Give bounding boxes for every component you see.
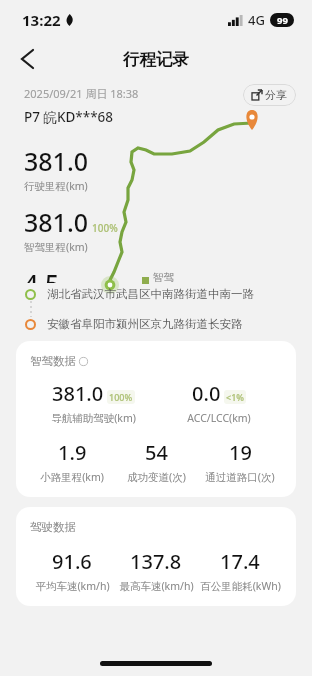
staticText: P7 皖KD***68	[24, 108, 114, 126]
staticText: 100%	[109, 391, 133, 403]
staticText: <1%	[226, 391, 244, 403]
staticText: 通过道路口(次)	[205, 470, 275, 484]
staticText: 平均车速(km/h)	[35, 579, 110, 593]
staticText: 百公里能耗(kWh)	[200, 579, 281, 593]
staticText: 137.8	[130, 548, 182, 575]
staticText: 54	[145, 439, 168, 466]
staticText: 100%	[92, 221, 118, 235]
staticText: 99	[277, 14, 288, 27]
staticText: 19	[229, 439, 252, 466]
staticText: 安徽省阜阳市颍州区京九路街道长安路	[47, 317, 243, 331]
staticText: 最高车速(km/h)	[119, 579, 194, 593]
button[interactable]: 分享	[243, 84, 296, 106]
staticText: 1.9	[58, 439, 87, 466]
staticText: ACC/LCC(km)	[187, 411, 251, 425]
staticText: 17.4	[220, 548, 260, 575]
staticText: 分享	[265, 88, 287, 102]
staticText: 智驾数据	[30, 354, 76, 368]
staticText: 2025/09/21 周日 18:38	[24, 86, 139, 101]
button[interactable]: 智驾数据	[16, 341, 296, 497]
staticText: 智驾里程(km)	[24, 240, 88, 254]
staticText: 智驾	[153, 271, 174, 284]
staticText: 湖北省武汉市武昌区中南路街道中南一路	[47, 287, 254, 301]
staticText: 381.0	[52, 380, 104, 407]
staticText: 13:22	[22, 10, 61, 30]
staticText: 4G	[248, 11, 265, 29]
staticText: 0.0	[192, 380, 221, 407]
button[interactable]: 驾驶数据	[16, 507, 296, 606]
button[interactable]: Back	[10, 42, 44, 76]
staticText: 381.0	[24, 144, 89, 178]
staticText: 4.5	[24, 266, 60, 283]
staticText: 驾驶数据	[30, 520, 76, 534]
staticText: 381.0	[24, 205, 89, 239]
staticText: 行驶里程(km)	[24, 179, 88, 193]
staticText: 行程记录	[123, 49, 189, 70]
staticText: 导航辅助驾驶(km)	[51, 411, 136, 425]
staticText: 成功变道(次)	[127, 470, 186, 484]
staticText: 91.6	[52, 548, 92, 575]
staticText: 小路里程(km)	[40, 470, 104, 484]
